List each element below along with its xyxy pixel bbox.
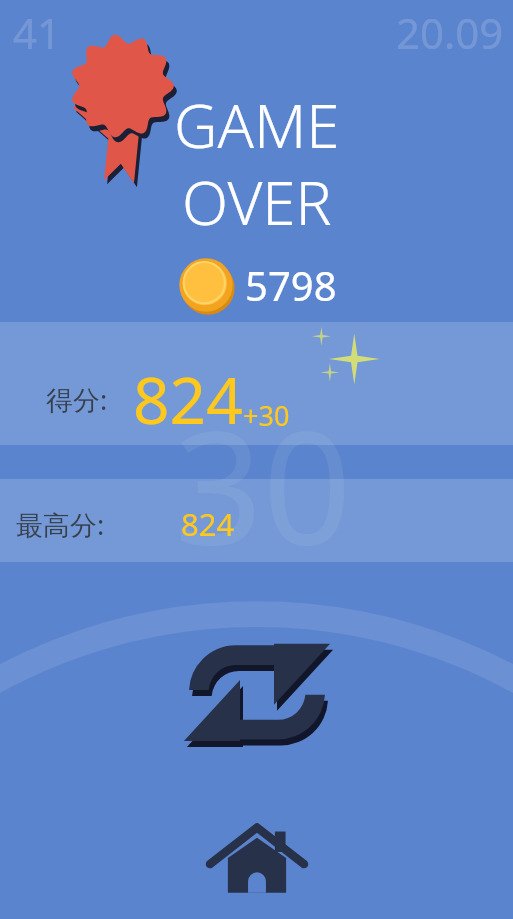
staticText: 得分: <box>46 381 108 418</box>
button[interactable]: Home <box>201 805 313 907</box>
staticText: 824 <box>181 503 235 545</box>
button[interactable]: Replay <box>172 614 342 779</box>
staticText: 20.09 <box>396 4 504 61</box>
staticText: 最高分: <box>16 506 105 543</box>
staticText: 824 <box>133 356 243 443</box>
staticText: 30 <box>174 378 352 589</box>
staticText: 5798 <box>245 258 337 312</box>
staticText: GAME <box>174 84 340 166</box>
staticText: +30 <box>243 397 290 434</box>
staticText: 41 <box>13 4 62 61</box>
staticText: OVER <box>182 161 332 243</box>
